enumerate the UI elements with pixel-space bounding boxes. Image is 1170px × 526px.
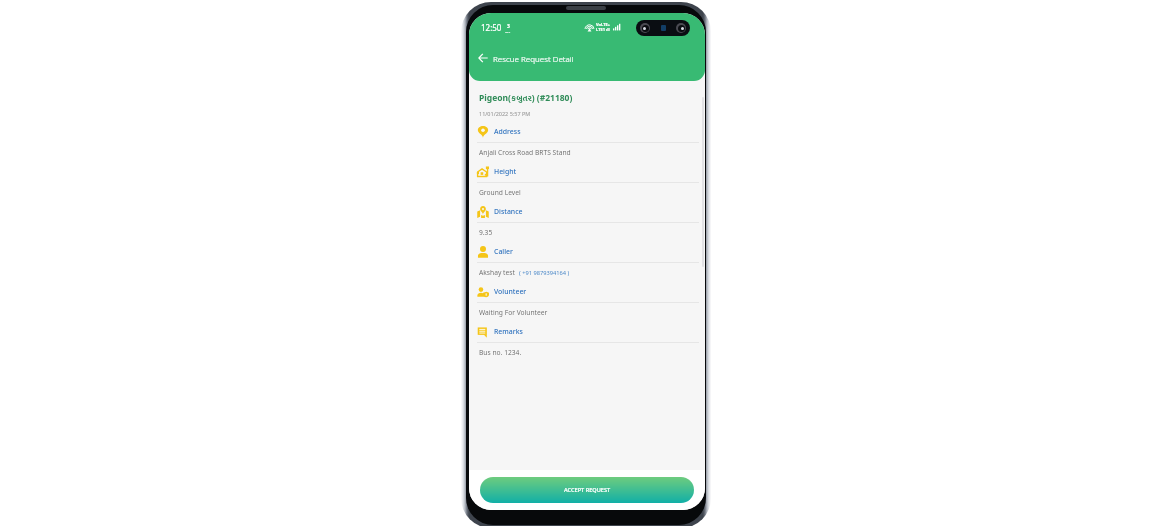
button[interactable]: Volunteer xyxy=(477,281,699,321)
staticText: Height xyxy=(494,167,517,176)
staticText: KB/s xyxy=(505,30,511,33)
staticText: Rescue Request Detail xyxy=(493,53,574,64)
staticText: 12:50 xyxy=(481,22,502,33)
button[interactable]: Caller xyxy=(477,241,699,281)
staticText: Caller xyxy=(494,247,513,256)
button[interactable]: Remarks xyxy=(477,321,699,361)
staticText: Remarks xyxy=(494,327,523,336)
staticText: VoLTE+ xyxy=(596,22,611,27)
staticText: Pigeon(કબુતર) (#21180) xyxy=(479,91,573,105)
button[interactable]: ACCEPT REQUEST xyxy=(480,477,694,503)
staticText: Akshay test xyxy=(479,268,515,277)
staticText: Distance xyxy=(494,207,523,216)
staticText: ( +91 9879394164 ) xyxy=(519,269,570,277)
staticText: Waiting For Volunteer xyxy=(479,308,548,317)
staticText: 11/01/2022 5:57 PM xyxy=(479,110,531,117)
button[interactable]: Distance xyxy=(477,201,699,241)
staticText: Ground Level xyxy=(479,188,521,197)
staticText: Anjali Cross Road BRTS Stand xyxy=(479,148,571,157)
staticText: Bus no. 1234. xyxy=(479,348,522,357)
staticText: LTE1 ıll xyxy=(596,27,610,32)
staticText: 9.35 xyxy=(479,228,493,237)
staticText: Address xyxy=(494,127,521,136)
staticText: 3 xyxy=(507,23,510,30)
staticText: Volunteer xyxy=(494,287,527,296)
button[interactable]: Height xyxy=(477,161,699,201)
button[interactable]: Back xyxy=(476,50,490,66)
button[interactable]: Address xyxy=(477,121,699,161)
staticText: ACCEPT REQUEST xyxy=(564,486,611,494)
